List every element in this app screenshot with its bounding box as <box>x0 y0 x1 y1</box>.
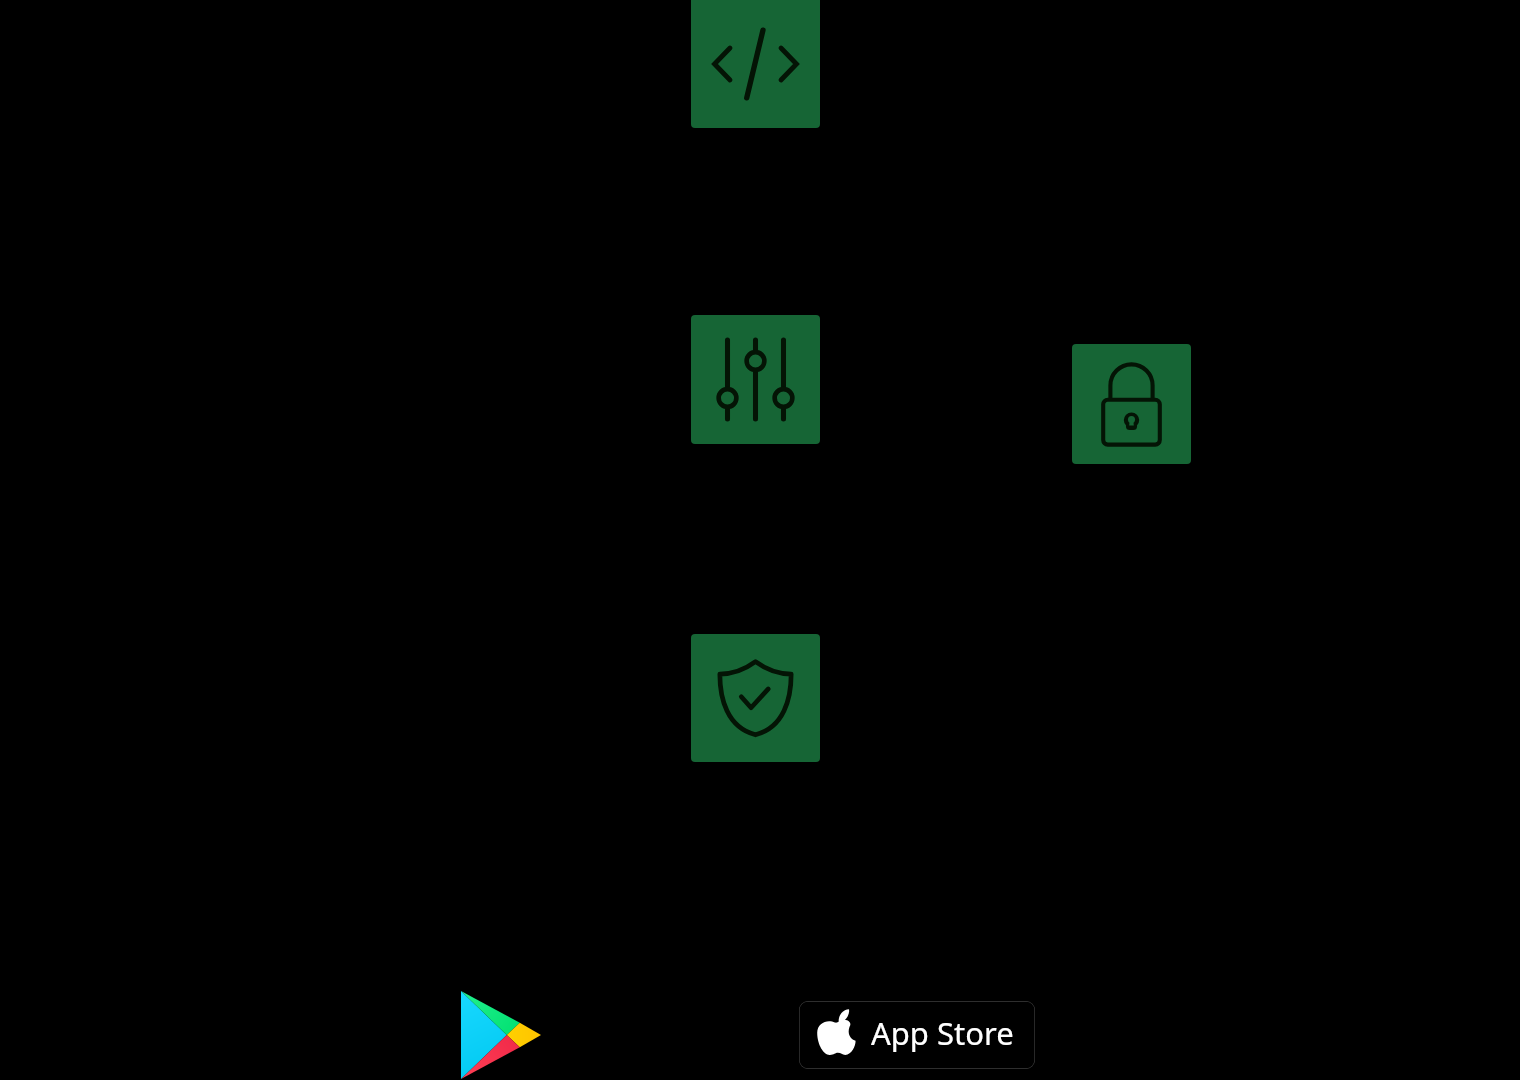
button[interactable]: App Store <box>799 1001 1035 1069</box>
button[interactable]: Feature <box>691 0 820 128</box>
button[interactable]: Feature <box>691 634 820 762</box>
button[interactable]: Feature <box>691 315 820 444</box>
button[interactable]: Feature <box>1072 344 1191 464</box>
staticText: App Store <box>871 1012 1014 1054</box>
button[interactable]: Get it on Google Play <box>461 991 541 1079</box>
